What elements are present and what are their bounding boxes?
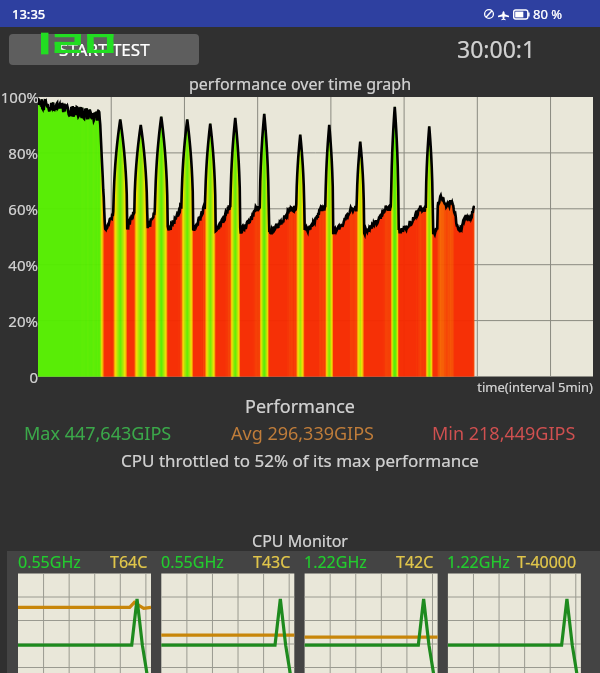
staticText: 80%: [8, 143, 38, 163]
staticText: 60%: [8, 199, 38, 219]
staticText: 30:00:1: [457, 33, 536, 64]
staticText: 1.22GHz: [304, 551, 367, 573]
other: Do not disturb: [484, 9, 494, 19]
staticText: T-40000: [517, 551, 577, 573]
staticText: 0.55GHz: [18, 551, 81, 573]
staticText: Avg 296,339GIPS: [231, 421, 374, 446]
button[interactable]: 1.22GHz: [436, 551, 579, 573]
staticText: T42C: [396, 551, 434, 573]
staticText: 80 %: [533, 5, 563, 23]
staticText: T64C: [110, 551, 148, 573]
other: Refresh rate 120: [41, 34, 115, 53]
staticText: T43C: [253, 551, 291, 573]
staticText: 0.55GHz: [161, 551, 224, 573]
staticText: time(interval 5min): [0, 378, 593, 396]
staticText: 40%: [8, 255, 38, 275]
other: Battery 80 percent: [513, 10, 530, 19]
staticText: Min 218,449GIPS: [432, 421, 576, 446]
staticText: START TEST: [59, 38, 150, 61]
staticText: 1.22GHz: [447, 551, 510, 573]
staticText: Max 447,643GIPS: [24, 421, 172, 446]
staticText: CPU throttled to 52% of its max performa…: [0, 449, 600, 472]
staticText: Performance: [0, 394, 600, 419]
staticText: 20%: [8, 311, 38, 331]
staticText: 100%: [0, 87, 38, 107]
button[interactable]: START TEST: [9, 34, 199, 65]
staticText: performance over time graph: [0, 73, 600, 95]
button[interactable]: 0.55GHz: [150, 551, 293, 573]
button[interactable]: 1.22GHz: [293, 551, 436, 573]
staticText: 13:35: [12, 5, 46, 23]
staticText: 0: [29, 367, 38, 387]
staticText: CPU Monitor: [0, 530, 600, 551]
other: Airplane mode: [498, 9, 509, 20]
button[interactable]: 0.55GHz: [7, 551, 150, 573]
